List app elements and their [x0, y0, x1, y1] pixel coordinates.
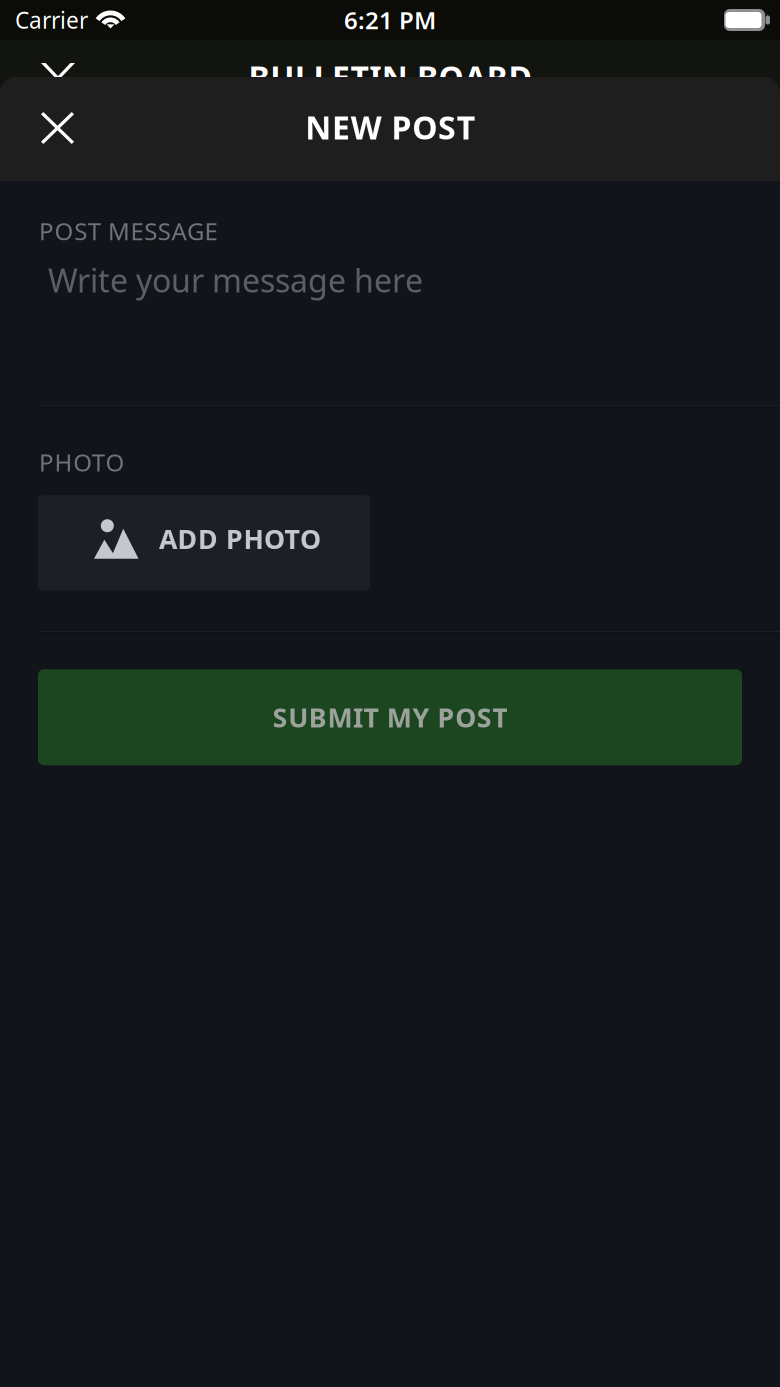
staticText: 6:21 PM	[344, 4, 436, 36]
staticText: Carrier	[15, 5, 88, 35]
staticText: NEW POST	[305, 106, 475, 148]
staticText: PHOTO	[39, 446, 124, 478]
button[interactable]: Close	[0, 92, 100, 166]
staticText: Write your message here	[48, 259, 423, 301]
button[interactable]: SUBMIT MY POST	[38, 669, 742, 765]
staticText: SUBMIT MY POST	[273, 699, 507, 735]
staticText: BULLETIN BOARD	[249, 56, 531, 98]
staticText: ADD PHOTO	[159, 521, 321, 556]
button[interactable]: ADD PHOTO	[38, 495, 370, 590]
staticText: POST MESSAGE	[39, 215, 218, 247]
